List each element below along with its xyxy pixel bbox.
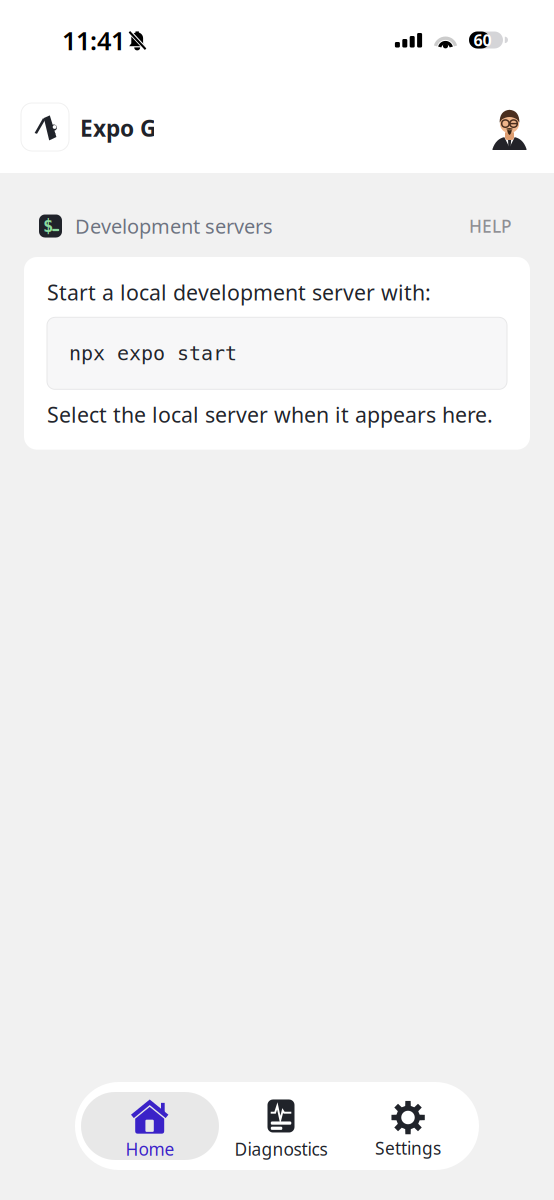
staticText: npx expo start: [69, 342, 237, 365]
button[interactable]: Settings: [343, 1092, 473, 1160]
staticText: Select the local server when it appears …: [47, 400, 493, 429]
staticText: 11:41: [62, 24, 125, 57]
button[interactable]: Account: [492, 104, 527, 150]
staticText: Start a local development server with:: [47, 278, 431, 306]
staticText: Diagnostics: [234, 1137, 327, 1160]
staticText: Expo Go: [80, 113, 170, 143]
staticText: Development servers: [75, 213, 273, 239]
button[interactable]: Diagnostics: [219, 1092, 343, 1160]
staticText: Home: [125, 1137, 174, 1160]
staticText: $: [43, 216, 53, 236]
button[interactable]: Home: [81, 1092, 219, 1160]
button[interactable]: Expo Go: [21, 103, 196, 151]
staticText: Settings: [375, 1136, 441, 1159]
button[interactable]: HELP: [469, 214, 512, 237]
staticText: HELP: [469, 214, 512, 237]
staticText: 60: [473, 29, 491, 51]
